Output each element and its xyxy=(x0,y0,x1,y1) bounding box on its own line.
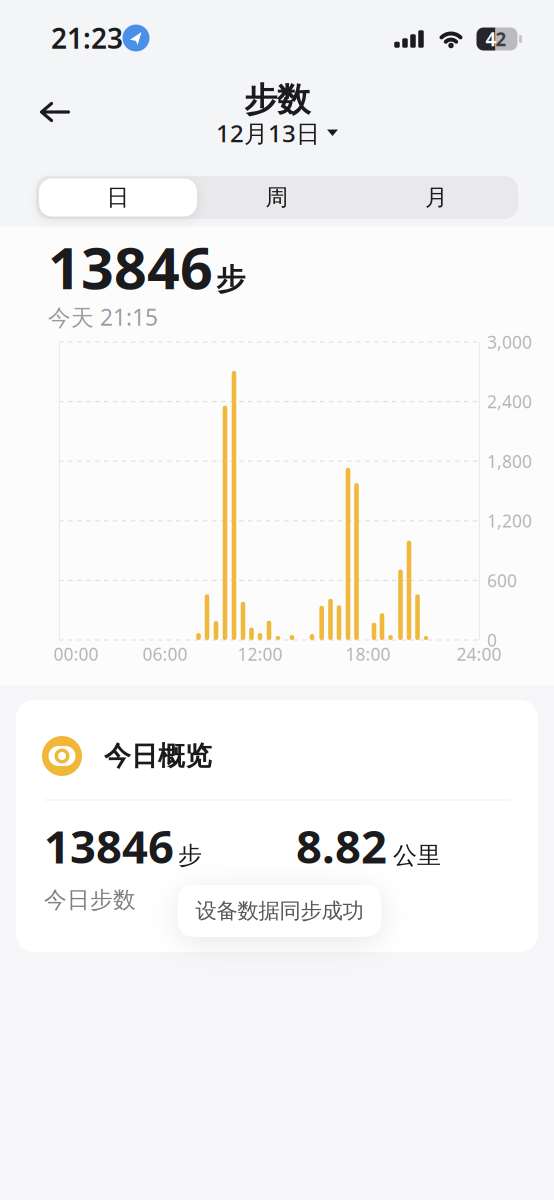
staticText: 步数 xyxy=(244,79,310,120)
staticText: 00:00 xyxy=(53,642,98,665)
staticText: 周 xyxy=(265,184,288,211)
staticText: 21:23 xyxy=(51,19,123,57)
staticText: 2,400 xyxy=(487,390,532,413)
staticText: 600 xyxy=(487,569,517,592)
staticText: 8.82 xyxy=(296,816,387,876)
staticText: 24:00 xyxy=(456,642,501,665)
staticText: 月 xyxy=(425,184,448,211)
staticText: 4 xyxy=(485,27,496,51)
staticText: 3,000 xyxy=(487,330,532,353)
staticText: 日 xyxy=(106,184,129,211)
staticText: 今日概览 xyxy=(104,740,212,772)
staticText: 今天 21:15 xyxy=(48,302,158,332)
staticText: 06:00 xyxy=(142,642,187,665)
staticText: 步 xyxy=(216,261,245,297)
button[interactable]: 月 xyxy=(360,179,513,215)
staticText: 1,200 xyxy=(487,509,532,532)
staticText: 13846 xyxy=(44,816,174,876)
staticText: 设备数据同步成功 xyxy=(195,898,363,924)
button[interactable]: 日 xyxy=(39,178,197,216)
staticText: 1,800 xyxy=(487,450,532,473)
staticText: 13846 xyxy=(48,229,213,305)
staticText: 步 xyxy=(178,841,202,870)
staticText: 12月13日 xyxy=(216,117,320,149)
staticText: 今日步数 xyxy=(44,886,136,914)
staticText: 2 xyxy=(495,27,506,51)
staticText: 18:00 xyxy=(345,642,390,665)
button[interactable]: 周 xyxy=(200,179,353,215)
button[interactable]: 返回 xyxy=(29,91,80,132)
button[interactable]: 12月13日 xyxy=(216,117,338,149)
staticText: 12:00 xyxy=(237,642,282,665)
staticText: 0 xyxy=(487,628,497,651)
staticText: 公里 xyxy=(393,841,441,870)
